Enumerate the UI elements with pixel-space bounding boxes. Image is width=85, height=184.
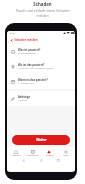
staticText: 11. Oktober 2023 xyxy=(18,82,35,85)
staticText: Schaden melden xyxy=(14,38,38,42)
button[interactable]: Dokumente xyxy=(25,150,41,157)
button[interactable]: Zurück xyxy=(8,37,14,43)
staticText: Weiter xyxy=(36,138,47,142)
button[interactable]: Mehr xyxy=(58,150,74,157)
staticText: Dokumente xyxy=(27,154,39,157)
staticText: Kornweg 2, 8037 Wettingen, Schweiz xyxy=(18,67,54,70)
staticText: Wann ist das passiert? xyxy=(18,78,48,82)
button[interactable]: Übersicht xyxy=(8,150,24,157)
staticText: Schaden xyxy=(45,154,54,157)
staticText: Fahrzeugdiebstahl xyxy=(18,52,36,55)
button[interactable]: Home xyxy=(40,159,43,162)
button[interactable]: Anhänge xyxy=(7,91,75,106)
button[interactable]: Schaden xyxy=(41,150,57,157)
staticText: Schaden xyxy=(33,1,52,7)
button[interactable]: Letzte Apps xyxy=(57,159,60,162)
staticText: Mehr xyxy=(63,154,69,157)
staticText: Rasch und einfach einen Schaden xyxy=(16,8,70,13)
staticText: Anhänge xyxy=(18,95,31,99)
staticText: Übersicht xyxy=(11,154,21,157)
button[interactable]: Zurück xyxy=(22,159,25,162)
staticText: 9:41 xyxy=(10,32,15,35)
staticText: Was ist passiert? xyxy=(18,48,41,52)
button[interactable]: Wo ist das passiert? xyxy=(7,59,75,74)
staticText: Wo ist das passiert? xyxy=(18,63,45,67)
staticText: melden xyxy=(36,13,49,18)
button[interactable]: Was ist passiert? xyxy=(7,44,75,59)
button[interactable]: Wann ist das passiert? xyxy=(7,74,75,89)
button[interactable]: Weiter xyxy=(12,135,70,145)
staticText: 1 Anhang xyxy=(18,99,28,102)
